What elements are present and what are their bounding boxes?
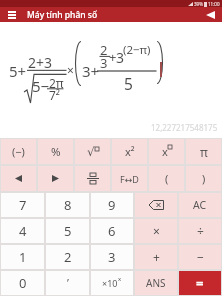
staticText: x xyxy=(162,144,168,159)
staticText: 5 xyxy=(124,73,133,94)
staticText: ×10 xyxy=(102,277,118,289)
button[interactable]: ÷ xyxy=(178,218,222,244)
staticText: 2 xyxy=(64,248,72,266)
button[interactable]: AC xyxy=(178,192,222,218)
staticText: × xyxy=(153,223,160,239)
button[interactable]: 6 xyxy=(90,218,134,244)
button[interactable] xyxy=(134,192,178,218)
button[interactable]: 3 xyxy=(90,244,134,270)
staticText: x² xyxy=(125,144,135,159)
button[interactable]: π xyxy=(185,138,222,165)
staticText: ÷ xyxy=(197,223,204,239)
button[interactable]: 9 xyxy=(90,192,134,218)
staticText: ) xyxy=(202,171,206,186)
button[interactable]: ’ xyxy=(45,270,90,296)
staticText: (−) xyxy=(12,144,25,159)
staticText: x xyxy=(118,275,122,283)
staticText: % xyxy=(51,144,61,160)
staticText: 9 xyxy=(108,196,116,214)
staticText: − xyxy=(197,249,204,265)
button[interactable]: x xyxy=(148,138,185,165)
staticText: 2 xyxy=(100,41,108,59)
button[interactable]: ANS xyxy=(134,270,178,296)
button[interactable]: 0 xyxy=(0,270,45,296)
button[interactable]: − xyxy=(178,244,222,270)
button[interactable]: × xyxy=(134,218,178,244)
button[interactable]: 7 xyxy=(0,192,45,218)
button[interactable] xyxy=(0,165,37,192)
staticText: 4 xyxy=(19,222,27,240)
button[interactable]: 8 xyxy=(45,192,90,218)
button[interactable]: 1 xyxy=(0,244,45,270)
button[interactable]: x² xyxy=(111,138,148,165)
staticText: π xyxy=(200,144,208,160)
button[interactable]: % xyxy=(37,138,74,165)
button[interactable]: ( xyxy=(148,165,185,192)
button[interactable] xyxy=(74,165,111,192)
staticText: 11:00 xyxy=(208,1,220,7)
staticText: ( xyxy=(165,171,169,186)
staticText: 7 xyxy=(19,196,27,214)
staticText: 39% xyxy=(194,1,203,7)
staticText: AC xyxy=(193,198,207,212)
staticText: 12,227217548175 xyxy=(151,122,218,133)
button[interactable] xyxy=(206,11,215,19)
staticText: 5− xyxy=(32,76,50,96)
staticText: 6 xyxy=(108,222,116,240)
button[interactable]: 4 xyxy=(0,218,45,244)
button[interactable] xyxy=(8,11,16,19)
button[interactable]: √ xyxy=(74,138,111,165)
staticText: 1 xyxy=(19,248,27,266)
staticText: = xyxy=(196,274,204,292)
staticText: 5 xyxy=(64,222,72,240)
staticText: 5+ xyxy=(9,61,27,81)
staticText: 7² xyxy=(49,87,61,103)
button[interactable]: (−) xyxy=(0,138,37,165)
staticText: + xyxy=(109,48,117,66)
button[interactable]: 5 xyxy=(45,218,90,244)
staticText: √ xyxy=(87,145,95,159)
staticText: 8 xyxy=(64,196,72,214)
button[interactable]: = xyxy=(178,270,222,296)
staticText: 2π xyxy=(49,75,64,91)
staticText: 0 xyxy=(19,274,27,292)
staticText: (2−π) xyxy=(123,42,151,58)
staticText: ’ xyxy=(67,275,69,290)
staticText: + xyxy=(153,249,160,265)
staticText: 3 xyxy=(108,248,116,266)
staticText: 3 xyxy=(116,48,125,67)
staticText: × xyxy=(67,62,74,78)
staticText: 2+3 xyxy=(28,53,53,72)
staticText: F↔D xyxy=(120,173,139,185)
button[interactable]: ) xyxy=(185,165,222,192)
staticText: 3 xyxy=(100,54,108,72)
button[interactable]: ×10 xyxy=(90,270,134,296)
button[interactable] xyxy=(37,165,74,192)
staticText: 3+ xyxy=(82,61,100,81)
staticText: Máy tính phân số xyxy=(27,9,98,21)
button[interactable]: + xyxy=(134,244,178,270)
staticText: ANS xyxy=(146,276,166,290)
button[interactable]: 2 xyxy=(45,244,90,270)
button[interactable]: F↔D xyxy=(111,165,148,192)
